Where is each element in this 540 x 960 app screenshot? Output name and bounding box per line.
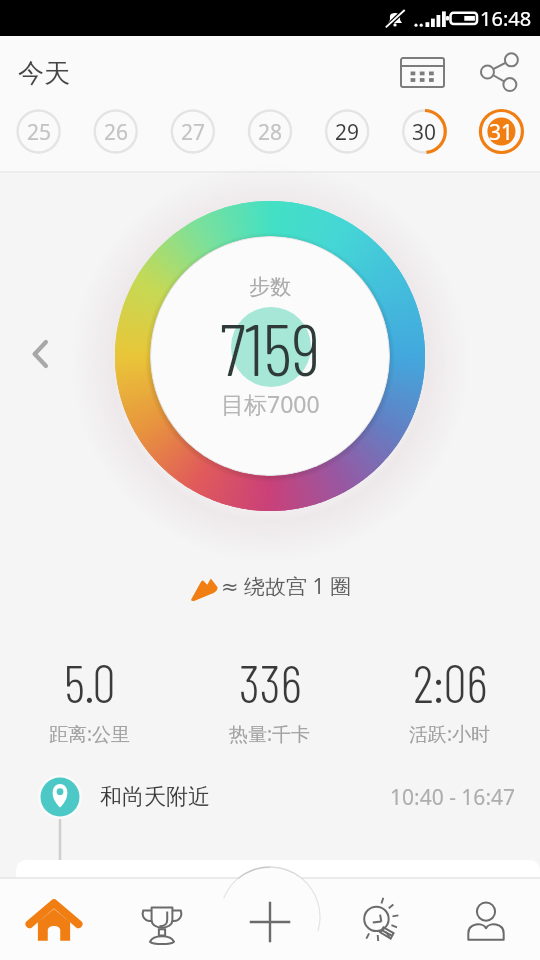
button[interactable]: Home [0, 884, 108, 960]
button[interactable]: Previous day [16, 330, 64, 378]
button[interactable]: 28 [232, 97, 309, 167]
button[interactable]: 27 [155, 97, 232, 167]
button[interactable]: Achievements [108, 884, 216, 960]
button[interactable]: Discover [324, 884, 432, 960]
staticText: 31 [489, 118, 514, 147]
staticText: 5.0 [64, 651, 116, 713]
staticText: 热量:千卡 [229, 721, 311, 747]
button[interactable]: 5.0 [0, 651, 180, 747]
staticText: 28 [258, 118, 283, 147]
button[interactable]: 336 [180, 651, 360, 747]
button[interactable]: 和尚夭附近 [0, 762, 540, 832]
staticText: 7159 [220, 304, 321, 390]
button[interactable]: Profile [432, 884, 540, 960]
staticText: 步数 [249, 274, 291, 300]
staticText: 和尚夭附近 [100, 783, 210, 811]
staticText: 目标7000 [221, 388, 320, 419]
staticText: 10:40 - 16:47 [390, 783, 516, 812]
staticText: ≈ 绕故宫 1 圈 [221, 572, 351, 601]
button[interactable]: Share [468, 40, 532, 104]
staticText: 今天 [18, 57, 70, 90]
staticText: 26 [104, 118, 129, 147]
staticText: 30 [412, 118, 437, 147]
button[interactable]: 31 [463, 97, 540, 167]
button[interactable]: Calendar [390, 40, 454, 104]
button[interactable]: 30 [386, 97, 463, 167]
staticText: 16:48 [480, 5, 532, 32]
button[interactable]: 26 [78, 97, 155, 167]
staticText: 活跃:小时 [409, 721, 491, 747]
staticText: 距离:公里 [49, 721, 131, 747]
staticText: 2:06 [413, 651, 488, 713]
staticText: 25 [27, 118, 52, 147]
button[interactable]: 25 [0, 97, 78, 167]
staticText: 27 [181, 118, 206, 147]
button[interactable]: 29 [309, 97, 386, 167]
staticText: 336 [239, 651, 302, 713]
staticText: 29 [335, 118, 360, 147]
button[interactable]: 2:06 [360, 651, 540, 747]
button[interactable]: Add [216, 884, 324, 960]
